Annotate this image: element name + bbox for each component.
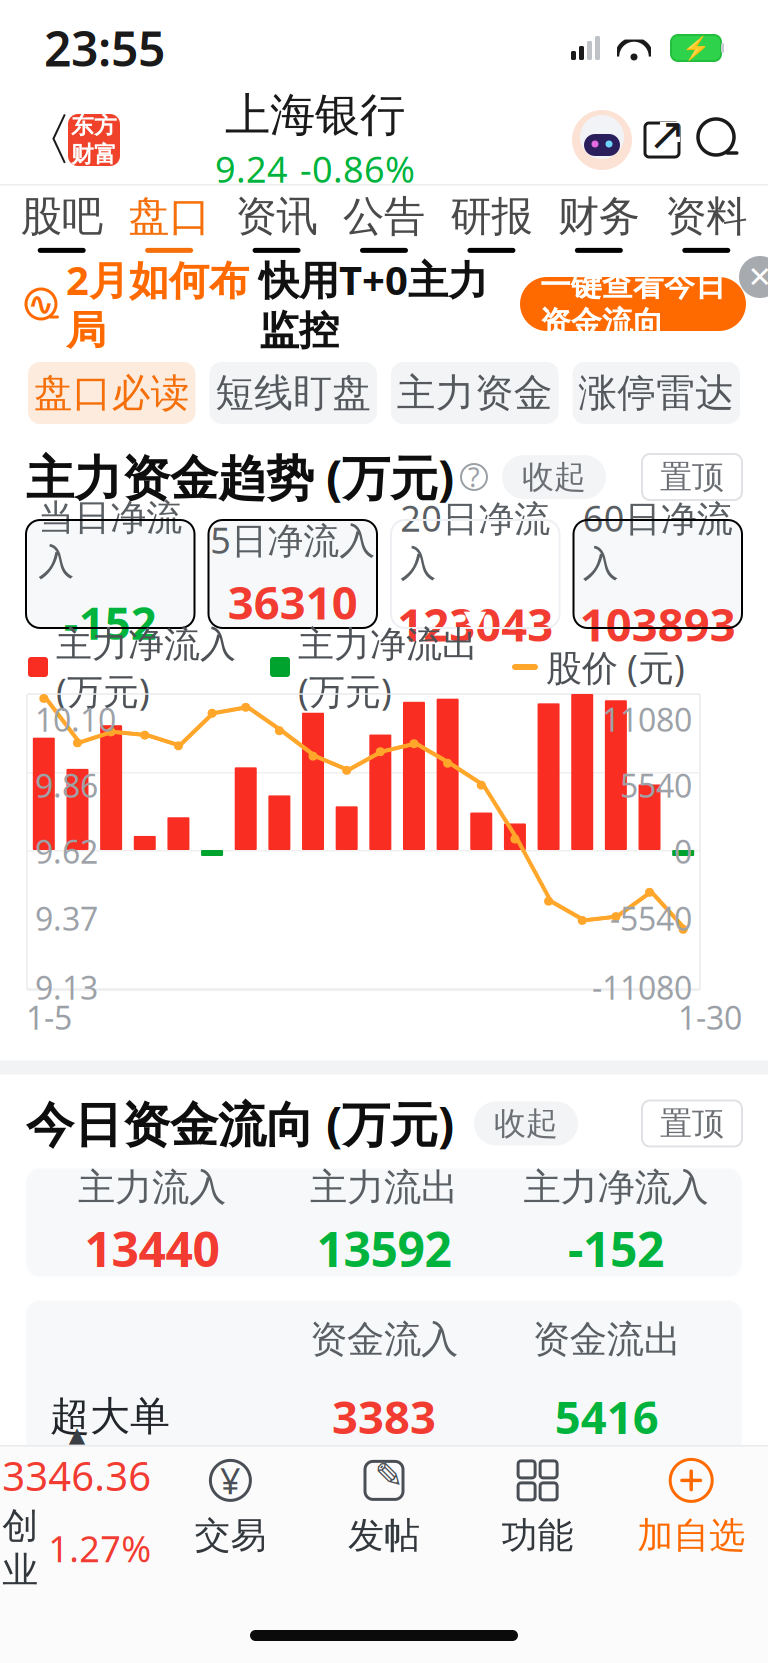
button[interactable]: 5日净流入 <box>208 520 377 628</box>
staticText: 加自选 <box>637 1513 745 1558</box>
button[interactable]: 当日净流入 <box>26 520 194 628</box>
staticText: 收起 <box>494 1104 558 1143</box>
button[interactable]: 资讯 <box>223 186 330 258</box>
staticText: 5日净流入 <box>210 516 375 564</box>
staticText: 9.24 <box>215 145 288 193</box>
staticText: 发帖 <box>348 1513 420 1558</box>
staticText: 财务 <box>558 191 640 242</box>
button[interactable]: 加自选 <box>614 1448 768 1566</box>
button[interactable]: 返回 <box>22 108 68 172</box>
button[interactable]: 智能助手 <box>570 108 634 172</box>
staticText: 20日净流入 <box>400 494 550 586</box>
staticText: 股价 (元) <box>546 643 685 691</box>
button[interactable]: 分享 <box>634 108 690 172</box>
staticText: ∿ <box>27 286 54 322</box>
staticText: 36310 <box>228 572 358 632</box>
staticText: 123043 <box>397 594 553 654</box>
button[interactable]: ▲ <box>0 1448 154 1566</box>
staticText: 公告 <box>343 191 425 242</box>
staticText: ⚡ <box>682 35 710 61</box>
staticText: 股吧 <box>21 191 103 242</box>
staticText: 2月如何布局 <box>66 253 249 355</box>
button[interactable]: 盘口 <box>115 186 223 258</box>
button[interactable]: 20日净流入 <box>391 520 559 628</box>
button[interactable]: 东方财富首页 <box>68 114 120 166</box>
button[interactable]: ∿ <box>0 261 768 347</box>
staticText: 主力资金 <box>397 369 553 417</box>
staticText: 资料 <box>665 191 747 242</box>
staticText: 主力净流入 <box>523 1165 708 1211</box>
staticText: 主力净流出 (万元) <box>298 619 478 715</box>
staticText: 主力净流入 (万元) <box>56 619 236 715</box>
button[interactable]: 资料 <box>653 186 760 258</box>
staticText: 短线盯盘 <box>215 369 371 417</box>
staticText: ✕ <box>747 260 768 294</box>
staticText: ▲ <box>69 1423 85 1447</box>
staticText: 9.62 <box>35 830 98 872</box>
button[interactable]: 公告 <box>330 186 438 258</box>
staticText: 1-30 <box>678 996 742 1038</box>
button[interactable]: 涨停雷达 <box>572 362 740 424</box>
staticText: 创业 <box>2 1504 38 1592</box>
staticText: 盘口必读 <box>34 369 190 417</box>
staticText: 研报 <box>450 191 532 242</box>
staticText: 3346.36 <box>2 1449 151 1502</box>
staticText: ? <box>468 459 480 495</box>
staticText: 收起 <box>522 457 586 497</box>
staticText: 超大单 <box>50 1392 170 1441</box>
staticText: -5540 <box>610 897 692 939</box>
staticText: 资金流入 <box>310 1317 458 1362</box>
staticText: 盘口 <box>128 191 210 242</box>
staticText: 9.37 <box>35 897 98 939</box>
button[interactable]: 收起 <box>474 1101 578 1145</box>
button[interactable]: 关闭广告 <box>724 261 768 305</box>
button[interactable]: 功能 <box>461 1448 614 1566</box>
staticText: ▼ <box>464 604 487 637</box>
staticText: 一键查看今日资金流向 <box>540 266 726 342</box>
staticText: 资讯 <box>236 191 318 242</box>
staticText: 快用T+0主力监控 <box>259 253 488 355</box>
button[interactable]: 置顶 <box>642 454 742 500</box>
staticText: -152 <box>64 592 157 652</box>
button[interactable]: 搜索 <box>690 108 746 172</box>
staticText: 主力流入 <box>78 1165 226 1211</box>
staticText: 〈 <box>17 106 73 174</box>
staticText: -11080 <box>592 966 692 1008</box>
staticText: 交易 <box>194 1513 266 1558</box>
staticText: ¥ <box>220 1456 241 1504</box>
button[interactable]: ✎ <box>307 1448 461 1566</box>
staticText: 13592 <box>316 1217 451 1280</box>
staticText: 5416 <box>555 1386 659 1447</box>
staticText: 今日资金流向 (万元) <box>26 1092 454 1155</box>
button[interactable]: 股吧 <box>8 186 115 258</box>
staticText: 置顶 <box>660 1104 724 1143</box>
staticText: 10.10 <box>35 698 116 740</box>
staticText: ✎ <box>374 1456 403 1495</box>
button[interactable]: 置顶 <box>642 1100 742 1146</box>
staticText: 23:55 <box>44 16 165 80</box>
staticText: 9.86 <box>35 764 98 806</box>
staticText: 东方 <box>71 112 117 139</box>
staticText: 主力资金趋势 (万元) <box>26 445 454 509</box>
staticText: ↗ <box>648 108 686 160</box>
button[interactable]: 60日净流入 <box>573 520 742 628</box>
button[interactable]: ¥ <box>154 1448 307 1566</box>
staticText: 13440 <box>84 1217 219 1280</box>
button[interactable]: 主力资金 <box>391 362 558 424</box>
button[interactable]: 说明 <box>454 457 494 497</box>
button[interactable]: 盘口必读 <box>28 362 195 424</box>
staticText: 103893 <box>580 594 736 654</box>
staticText: 0 <box>674 830 692 872</box>
staticText: 3383 <box>332 1386 436 1447</box>
button[interactable]: 收起 <box>502 455 606 499</box>
staticText: 11080 <box>602 698 692 740</box>
staticText: 主力流出 <box>310 1165 458 1211</box>
button[interactable]: 短线盯盘 <box>209 362 377 424</box>
staticText: 当日净流入 <box>38 496 182 584</box>
staticText: -152 <box>568 1217 664 1280</box>
staticText: 功能 <box>502 1513 574 1558</box>
button[interactable]: 研报 <box>438 186 545 258</box>
staticText: 9.13 <box>35 966 98 1008</box>
button[interactable]: 财务 <box>545 186 652 258</box>
staticText: 资金流出 <box>533 1317 681 1362</box>
